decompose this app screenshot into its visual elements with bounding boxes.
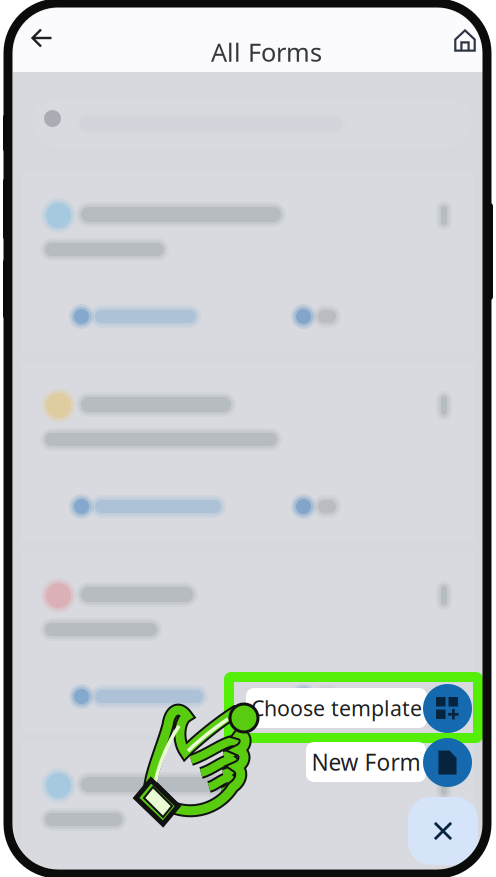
staticText: All Forms (211, 35, 322, 69)
button[interactable]: New Form (306, 738, 476, 787)
button[interactable]: Home (444, 19, 486, 62)
staticText: New Form (311, 747, 420, 777)
staticText: Choose template (251, 694, 422, 722)
button[interactable]: Back (21, 17, 63, 59)
button[interactable]: Close (408, 797, 478, 865)
button[interactable]: Choose template (246, 684, 476, 733)
